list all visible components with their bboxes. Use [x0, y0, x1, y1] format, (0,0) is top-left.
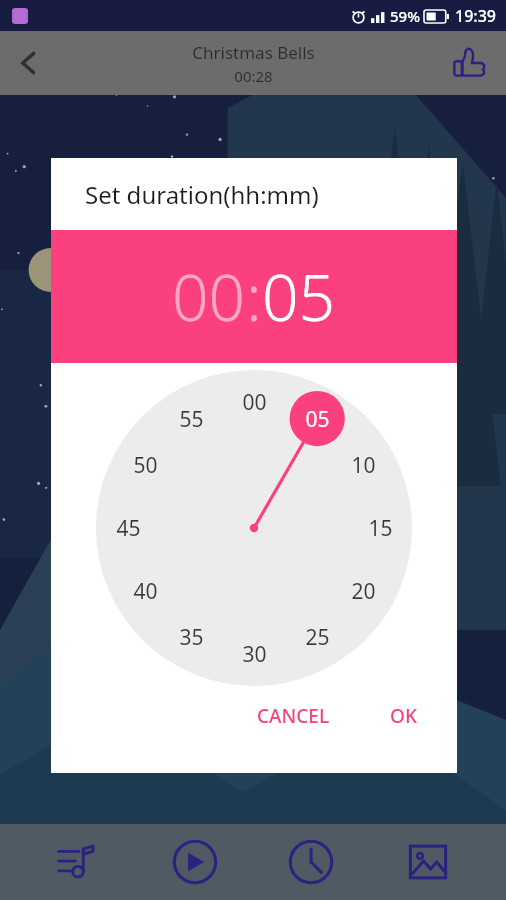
button[interactable]: Playlist	[39, 827, 117, 897]
button[interactable]: Back	[0, 34, 58, 92]
staticText: 05	[305, 405, 330, 434]
button[interactable]: Image	[389, 827, 467, 897]
button[interactable]: 20	[337, 565, 389, 617]
staticText: 15	[368, 514, 393, 543]
button[interactable]: 40	[119, 565, 171, 617]
button[interactable]: 30	[228, 628, 280, 680]
staticText: 59%	[390, 6, 420, 26]
staticText: OK	[390, 703, 417, 729]
staticText: 40	[133, 577, 158, 606]
staticText: 25	[305, 623, 330, 652]
staticText: 30	[242, 640, 267, 669]
button[interactable]: 25	[291, 611, 343, 663]
button[interactable]: 10	[337, 439, 389, 491]
staticText: 50	[133, 451, 158, 480]
staticText: CANCEL	[257, 703, 330, 729]
staticText: 19:39	[455, 5, 496, 27]
button[interactable]: 00	[228, 376, 280, 428]
button[interactable]: Timer	[272, 827, 350, 897]
staticText: 55	[179, 405, 204, 434]
button[interactable]: 00	[172, 253, 246, 340]
staticText: 10	[351, 451, 376, 480]
button[interactable]: 05	[262, 253, 336, 340]
button[interactable]: Like	[442, 35, 498, 91]
button[interactable]: 45	[102, 502, 154, 554]
staticText: Christmas Bells	[192, 41, 315, 64]
staticText: 35	[179, 623, 204, 652]
staticText: 00	[242, 388, 267, 417]
button[interactable]: CANCEL	[239, 693, 348, 739]
button[interactable]: 15	[354, 502, 406, 554]
staticText: 20	[351, 577, 376, 606]
staticText: 45	[116, 514, 141, 543]
staticText: :	[246, 253, 262, 340]
button[interactable]: Play	[156, 827, 234, 897]
staticText: 00	[172, 253, 246, 340]
button[interactable]: 55	[165, 393, 217, 445]
staticText: 05	[262, 253, 336, 340]
button[interactable]: 50	[119, 439, 171, 491]
staticText: Set duration(hh:mm)	[85, 178, 319, 211]
staticText: 00:28	[234, 66, 273, 86]
button[interactable]: OK	[372, 693, 435, 739]
button[interactable]: 05	[291, 393, 343, 445]
button[interactable]: 35	[165, 611, 217, 663]
